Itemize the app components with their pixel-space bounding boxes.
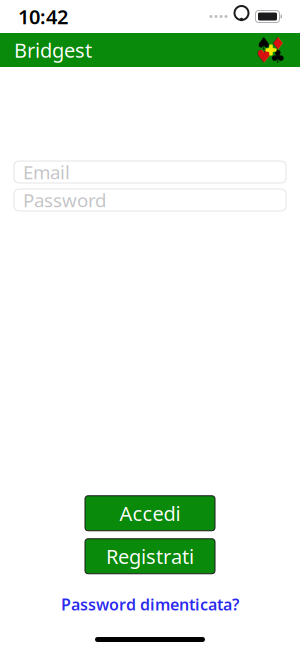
- staticText: Email: [23, 160, 70, 184]
- staticText: Registrati: [106, 543, 194, 570]
- button[interactable]: Registrati: [85, 539, 215, 574]
- staticText: Password dimenticata?: [61, 594, 239, 615]
- staticText: Password: [23, 188, 106, 212]
- staticText: ♦: [270, 34, 286, 53]
- staticText: 10:42: [18, 3, 68, 30]
- button[interactable]: Bridgest menu: [256, 35, 286, 65]
- staticText: Bridgest: [14, 37, 92, 63]
- button[interactable]: Accedi: [85, 496, 215, 531]
- staticText: Accedi: [119, 500, 180, 527]
- button[interactable]: Password dimenticata?: [53, 582, 247, 615]
- staticText: ♠: [256, 34, 272, 53]
- staticText: ♥: [256, 47, 272, 66]
- staticText: ♣: [270, 47, 286, 66]
